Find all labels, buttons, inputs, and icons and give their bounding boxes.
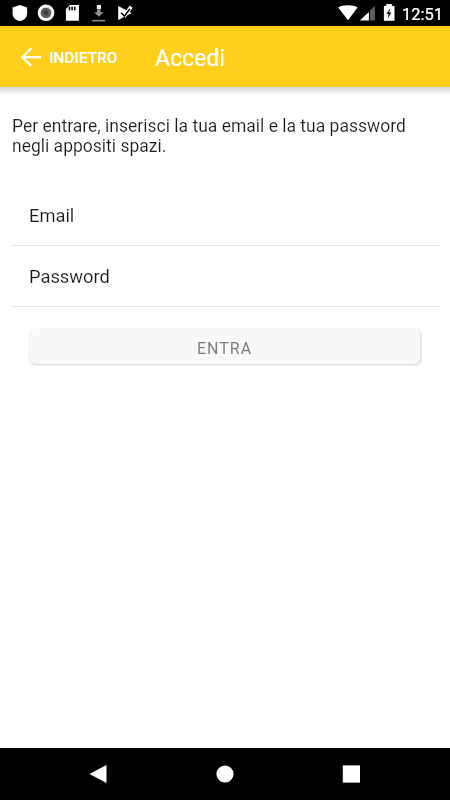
- other: Indietro: [21, 48, 41, 66]
- staticText: INDIETRO: [49, 49, 118, 67]
- staticText: Accedi: [155, 45, 225, 72]
- button[interactable]: Email: [0, 185, 450, 246]
- staticText: 12:51: [402, 5, 444, 24]
- button[interactable]: Recents: [328, 750, 376, 798]
- staticText: Email: [29, 205, 75, 226]
- staticText: ENTRA: [197, 339, 253, 358]
- button[interactable]: Home: [201, 750, 249, 798]
- staticText: Per entrare, inserisci la tua email e la…: [12, 116, 419, 156]
- button[interactable]: Password: [0, 246, 450, 307]
- staticText: Password: [29, 266, 110, 287]
- button[interactable]: Back: [74, 750, 122, 798]
- button[interactable]: Indietro: [0, 36, 132, 78]
- button[interactable]: ENTRA: [30, 329, 420, 364]
